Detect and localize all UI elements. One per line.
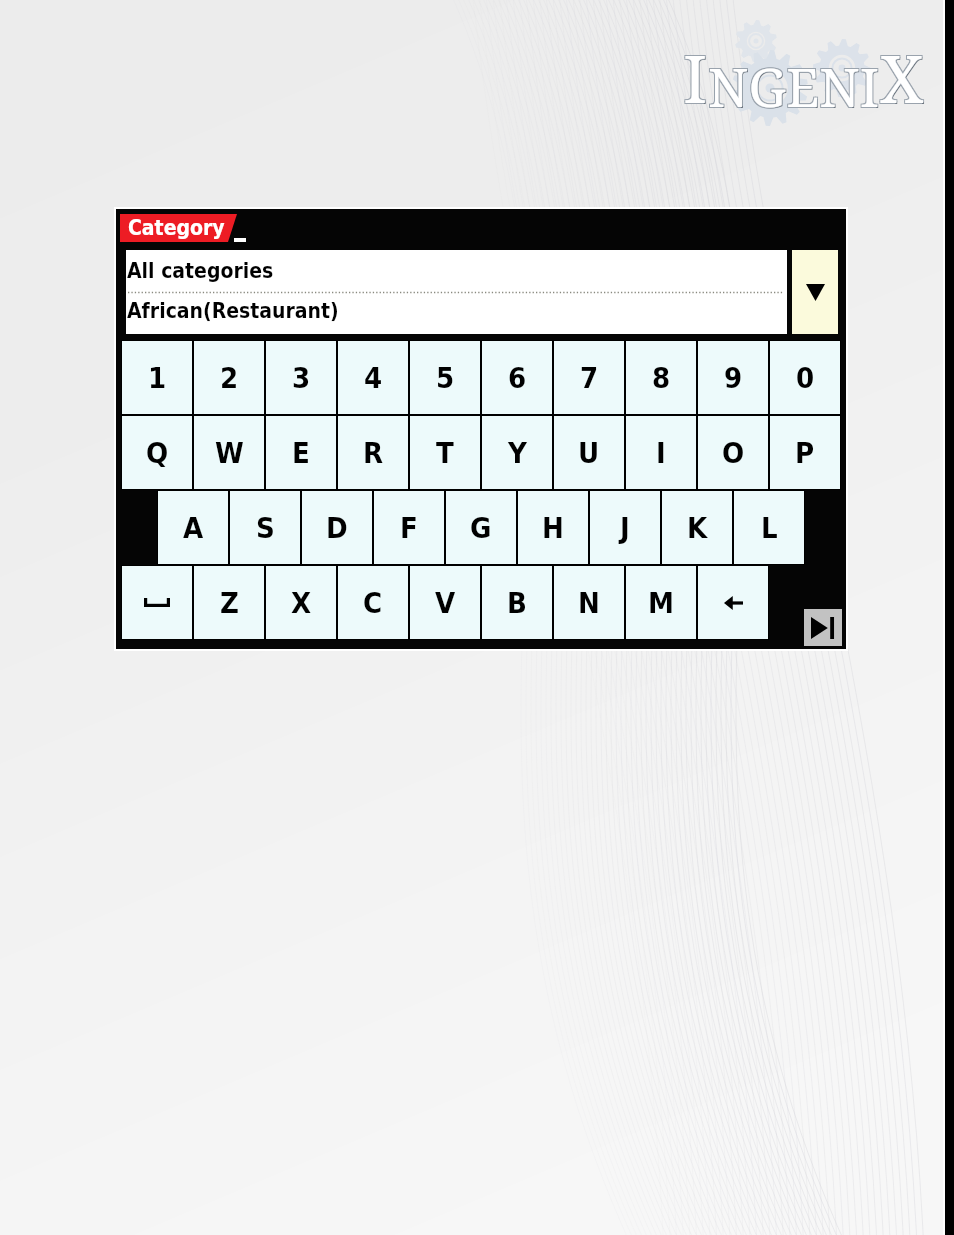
staticText: NGENI — [709, 51, 881, 123]
button[interactable]: X — [266, 566, 336, 639]
button[interactable]: All categories — [126, 250, 787, 292]
staticText: B — [507, 586, 527, 620]
staticText: 1 — [148, 361, 167, 395]
staticText: NGENI — [708, 50, 880, 122]
staticText: 8 — [652, 361, 671, 395]
button[interactable]: Open category dropdown — [792, 250, 838, 334]
staticText: 6 — [508, 361, 527, 395]
staticText: 7 — [580, 361, 599, 395]
button[interactable]: K — [662, 491, 732, 564]
staticText: A — [183, 511, 204, 545]
button[interactable]: A — [158, 491, 228, 564]
button[interactable]: L — [734, 491, 804, 564]
staticText: 2 — [220, 361, 239, 395]
staticText: Z — [220, 586, 239, 620]
staticText: X — [881, 33, 925, 123]
button[interactable]: 2 — [194, 341, 264, 414]
staticText: African(Restaurant) — [127, 299, 339, 323]
staticText: All categories — [127, 259, 274, 283]
button[interactable]: Space — [122, 566, 192, 639]
staticText: C — [363, 586, 383, 620]
button[interactable]: Q — [122, 416, 192, 489]
staticText: I — [682, 31, 707, 121]
staticText: NGENI — [707, 49, 879, 121]
staticText: G — [470, 511, 492, 545]
button[interactable]: 5 — [410, 341, 480, 414]
button[interactable]: V — [410, 566, 480, 639]
staticText: U — [578, 436, 600, 470]
staticText: Category — [128, 216, 225, 240]
staticText: S — [256, 511, 275, 545]
staticText: 5 — [436, 361, 455, 395]
staticText: W — [215, 436, 244, 470]
button[interactable]: U — [554, 416, 624, 489]
button[interactable]: H — [518, 491, 588, 564]
staticText: M — [648, 586, 674, 620]
staticText: X — [879, 31, 923, 121]
button[interactable]: F — [374, 491, 444, 564]
button[interactable]: African(Restaurant) — [126, 293, 787, 334]
button[interactable]: Z — [194, 566, 264, 639]
staticText: L — [761, 511, 778, 545]
button[interactable]: 0 — [770, 341, 840, 414]
button[interactable]: 8 — [626, 341, 696, 414]
staticText: H — [542, 511, 564, 545]
staticText: 4 — [364, 361, 383, 395]
button[interactable]: T — [410, 416, 480, 489]
button[interactable]: Backspace — [698, 566, 768, 639]
staticText: F — [400, 511, 418, 545]
staticText: P — [795, 436, 815, 470]
staticText: Q — [146, 436, 169, 470]
staticText: X — [879, 33, 923, 123]
staticText: O — [722, 436, 745, 470]
button[interactable]: R — [338, 416, 408, 489]
staticText: 0 — [796, 361, 815, 395]
staticText: X — [291, 586, 312, 620]
staticText: I — [684, 31, 709, 121]
staticText: X — [881, 31, 925, 121]
staticText: I — [684, 33, 709, 123]
button[interactable]: G — [446, 491, 516, 564]
button[interactable]: 3 — [266, 341, 336, 414]
button[interactable]: S — [230, 491, 300, 564]
staticText: I — [656, 436, 666, 470]
button[interactable]: B — [482, 566, 552, 639]
button[interactable]: J — [590, 491, 660, 564]
button[interactable]: D — [302, 491, 372, 564]
button[interactable]: 1 — [122, 341, 192, 414]
staticText: 3 — [292, 361, 311, 395]
staticText: D — [326, 511, 348, 545]
button[interactable]: I — [626, 416, 696, 489]
button[interactable]: 7 — [554, 341, 624, 414]
staticText: N — [578, 586, 600, 620]
staticText: Y — [508, 436, 527, 470]
staticText: I — [682, 33, 707, 123]
button[interactable]: N — [554, 566, 624, 639]
staticText: R — [363, 436, 384, 470]
button[interactable]: 6 — [482, 341, 552, 414]
staticText: NGENI — [709, 49, 881, 121]
staticText: X — [880, 32, 924, 122]
button[interactable]: 9 — [698, 341, 768, 414]
staticText: J — [620, 511, 630, 545]
button[interactable]: C — [338, 566, 408, 639]
button[interactable]: O — [698, 416, 768, 489]
button[interactable]: W — [194, 416, 264, 489]
staticText: I — [683, 32, 708, 122]
staticText: E — [292, 436, 310, 470]
staticText: K — [687, 511, 708, 545]
button[interactable]: 4 — [338, 341, 408, 414]
staticText: T — [436, 436, 454, 470]
button[interactable]: Category — [120, 214, 237, 242]
staticText: 9 — [724, 361, 743, 395]
staticText: NGENI — [707, 51, 879, 123]
button[interactable]: Y — [482, 416, 552, 489]
button[interactable]: M — [626, 566, 696, 639]
button[interactable]: E — [266, 416, 336, 489]
staticText: V — [435, 586, 456, 620]
button[interactable]: P — [770, 416, 840, 489]
button[interactable]: Next — [804, 609, 842, 646]
